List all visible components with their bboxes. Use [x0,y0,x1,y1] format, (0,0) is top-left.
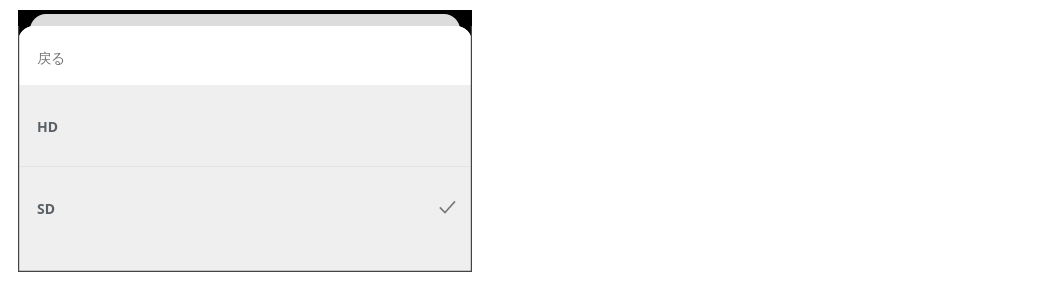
staticText: SD [37,199,55,218]
button[interactable]: HD [18,85,472,166]
staticText: 戻る [37,50,66,68]
other: Selected [435,195,459,219]
button[interactable]: SD [18,167,472,272]
staticText: HD [37,117,58,136]
button[interactable]: 戻る [18,26,472,85]
